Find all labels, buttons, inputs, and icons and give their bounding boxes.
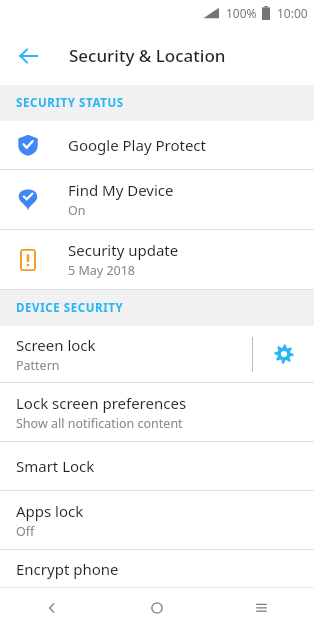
staticText: Google Play Protect xyxy=(68,135,206,155)
staticText: On xyxy=(68,202,86,219)
staticText: Apps lock xyxy=(16,501,84,521)
staticText: Security & Location xyxy=(69,44,226,67)
button[interactable]: Screen lock xyxy=(0,326,252,382)
staticText: Off xyxy=(16,523,35,540)
staticText: Smart Lock xyxy=(16,456,95,476)
button[interactable]: Security update xyxy=(0,230,314,289)
staticText: 100% xyxy=(226,5,257,21)
staticText: SECURITY STATUS xyxy=(16,95,124,111)
button[interactable]: Smart Lock xyxy=(0,442,314,490)
button[interactable]: Back xyxy=(0,587,104,628)
button[interactable]: Back xyxy=(10,38,46,74)
button[interactable]: Screen lock settings xyxy=(253,326,314,382)
staticText: Lock screen preferences xyxy=(16,393,187,413)
staticText: Encrypt phone xyxy=(16,559,119,579)
staticText: 10:00 xyxy=(277,5,308,21)
button[interactable]: Apps lock xyxy=(0,491,314,549)
staticText: Security update xyxy=(68,240,179,260)
button[interactable]: Lock screen preferences xyxy=(0,383,314,441)
button[interactable]: Encrypt phone xyxy=(0,550,314,587)
staticText: Screen lock xyxy=(16,335,96,355)
staticText: 5 May 2018 xyxy=(68,262,135,279)
staticText: Pattern xyxy=(16,357,60,374)
staticText: Find My Device xyxy=(68,180,174,200)
button[interactable]: Google Play Protect xyxy=(0,121,314,169)
button[interactable]: Find My Device xyxy=(0,170,314,229)
staticText: Show all notification content xyxy=(16,415,183,432)
button[interactable]: Recent apps xyxy=(209,587,314,628)
button[interactable]: Home xyxy=(104,587,209,628)
staticText: DEVICE SECURITY xyxy=(16,300,124,316)
